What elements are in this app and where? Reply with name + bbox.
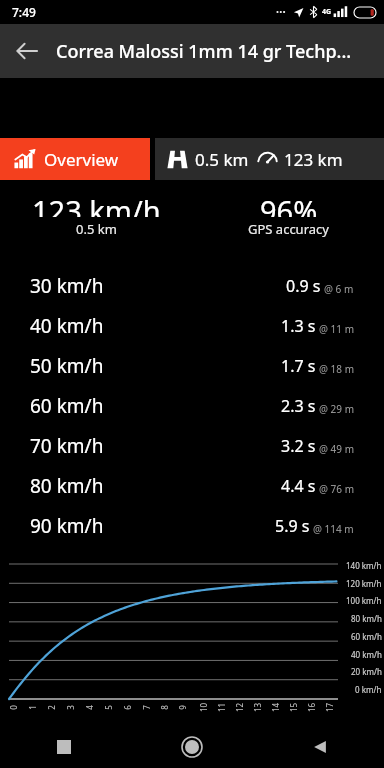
staticText: 1.7 s — [281, 355, 316, 377]
staticText: 13 — [251, 702, 262, 712]
staticText: 1 — [27, 705, 38, 710]
button[interactable]: 30 km/h — [0, 266, 384, 306]
staticText: 100 km/h — [346, 595, 382, 606]
staticText: 60 km/h — [351, 631, 382, 642]
button[interactable]: 50 km/h — [0, 346, 384, 386]
staticText: 30 km/h — [30, 273, 104, 299]
button[interactable]: 60 km/h — [0, 386, 384, 426]
staticText: @ 114 m — [313, 522, 354, 536]
staticText: 120 km/h — [346, 578, 382, 589]
button[interactable]: 0.5 km — [155, 138, 384, 180]
staticText: 20 km/h — [351, 666, 382, 677]
button[interactable]: Back — [256, 726, 384, 768]
staticText: 6 — [122, 705, 133, 710]
staticText: 5.9 s — [275, 515, 310, 537]
button[interactable]: 40 km/h — [0, 306, 384, 346]
staticText: GPS accuracy — [248, 220, 329, 238]
staticText: 123 km/h — [32, 196, 161, 217]
staticText: 60 km/h — [30, 393, 104, 419]
staticText: 7 — [141, 705, 152, 710]
button[interactable]: Recent apps — [0, 726, 128, 768]
staticText: 4G — [322, 7, 332, 17]
staticText: 123 km — [284, 148, 343, 171]
staticText: 2 — [46, 705, 57, 710]
staticText: 3 — [65, 705, 76, 710]
staticText: 11 — [215, 702, 226, 712]
staticText: 0.9 s — [286, 275, 321, 297]
staticText: 9 — [177, 705, 188, 710]
staticText: 2.3 s — [281, 395, 316, 417]
button[interactable]: Home — [128, 726, 256, 768]
button[interactable]: 70 km/h — [0, 426, 384, 466]
staticText: 80 km/h — [30, 473, 104, 499]
staticText: 96% — [260, 196, 318, 217]
staticText: 10 — [197, 702, 208, 712]
staticText: @ 29 m — [319, 402, 354, 416]
staticText: @ 18 m — [319, 362, 354, 376]
staticText: 0 km/h — [355, 684, 382, 695]
staticText: 7:49 — [12, 4, 36, 20]
staticText: 15 — [287, 702, 298, 712]
button[interactable]: 90 km/h — [0, 506, 384, 546]
staticText: 5 — [103, 705, 114, 710]
staticText: 16 — [305, 702, 316, 712]
staticText: 3.2 s — [281, 435, 316, 457]
staticText: Correa Malossi 1mm 14 gr Techp... — [56, 39, 352, 64]
staticText: 40 km/h — [351, 649, 382, 660]
staticText: 40 km/h — [30, 313, 104, 339]
staticText: 0.5 km — [76, 220, 117, 238]
staticText: 80 km/h — [351, 613, 382, 624]
staticText: 140 km/h — [346, 560, 382, 571]
staticText: @ 49 m — [319, 442, 354, 456]
staticText: 17 — [323, 702, 334, 712]
button[interactable]: Overview — [0, 138, 150, 180]
button[interactable]: Back — [0, 24, 54, 78]
staticText: 12 — [233, 702, 244, 712]
staticText: 90 km/h — [30, 513, 104, 539]
staticText: @ 6 m — [324, 282, 354, 296]
staticText: 8 — [159, 705, 170, 710]
staticText: 0.5 km — [195, 148, 249, 171]
button[interactable]: 80 km/h — [0, 466, 384, 506]
staticText: @ 11 m — [319, 322, 354, 336]
staticText: 70 km/h — [30, 433, 104, 459]
staticText: 50 km/h — [30, 353, 104, 379]
staticText: 4 — [84, 705, 95, 710]
staticText: 4.4 s — [281, 475, 316, 497]
staticText: 0 — [8, 705, 19, 710]
staticText: @ 76 m — [319, 482, 354, 496]
staticText: Overview — [44, 148, 119, 171]
staticText: 14 — [269, 702, 280, 712]
staticText: 1.3 s — [281, 315, 316, 337]
